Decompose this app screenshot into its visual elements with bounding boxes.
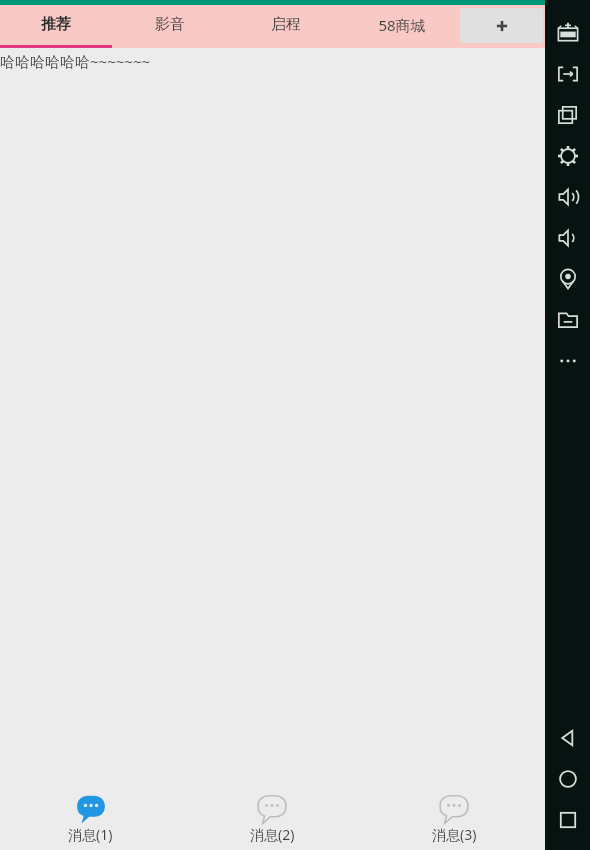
button[interactable]: Home [545, 758, 590, 799]
button[interactable]: Add tab [460, 8, 543, 43]
staticText: 影音 [155, 15, 185, 34]
button[interactable]: Back [545, 717, 590, 758]
button[interactable]: 消息(3) [363, 788, 545, 850]
staticText: 消息(3) [432, 825, 477, 844]
staticText: 消息(2) [250, 825, 295, 844]
button[interactable]: Transfer [545, 53, 590, 94]
button[interactable]: Volume up [545, 176, 590, 217]
button[interactable]: 启程 [228, 5, 344, 48]
button[interactable]: Recents [545, 799, 590, 840]
button[interactable]: Install APK [545, 12, 590, 53]
button[interactable]: Settings [545, 135, 590, 176]
button[interactable]: Windows [545, 94, 590, 135]
staticText: 消息(1) [68, 825, 113, 844]
button[interactable]: 影音 [112, 5, 228, 48]
staticText: 启程 [271, 15, 301, 34]
button[interactable]: 58商城 [344, 5, 460, 48]
button[interactable]: Volume down [545, 217, 590, 258]
staticText: 哈哈哈哈哈哈~~~~~~~ [0, 51, 151, 71]
button[interactable]: 推荐 [0, 5, 112, 48]
button[interactable]: 消息(1) [0, 788, 181, 850]
button[interactable]: More [545, 340, 590, 381]
button[interactable]: 消息(2) [181, 788, 363, 850]
staticText: 推荐 [41, 15, 71, 34]
button[interactable]: Files [545, 299, 590, 340]
staticText: 58商城 [378, 15, 426, 35]
button[interactable]: Location [545, 258, 590, 299]
